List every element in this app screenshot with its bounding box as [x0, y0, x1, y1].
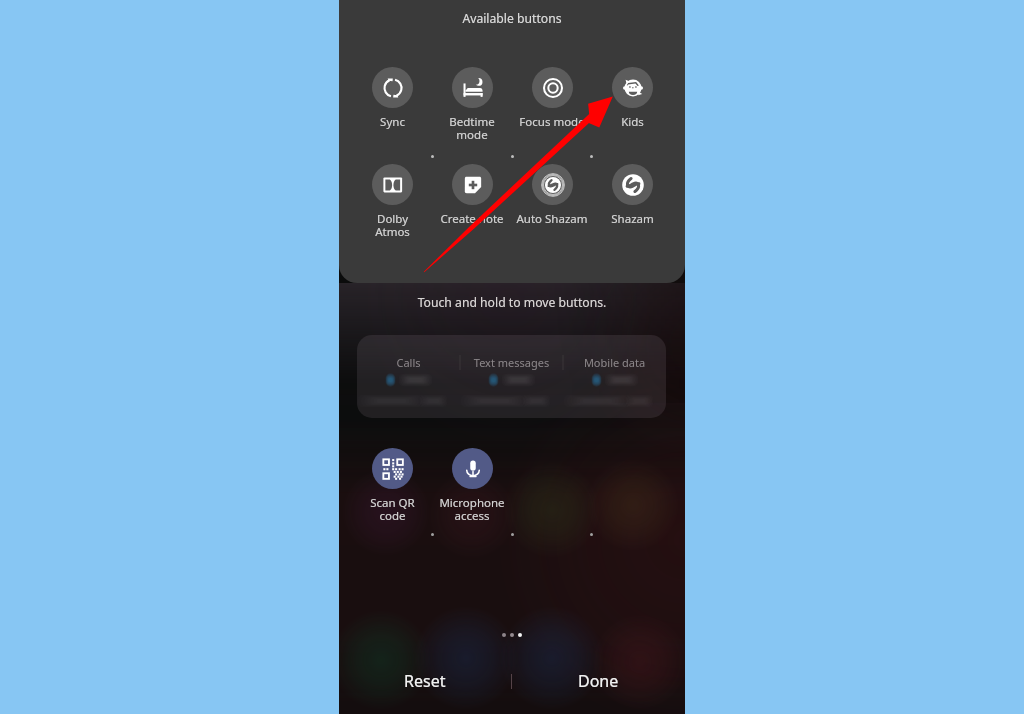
- other: Create note: [452, 164, 493, 205]
- staticText: Mobile data: [563, 355, 666, 370]
- button[interactable]: Shazam: [592, 164, 672, 227]
- button[interactable]: Reset: [339, 665, 511, 697]
- staticText: Touch and hold to move buttons.: [339, 294, 685, 311]
- staticText: Calls: [357, 355, 460, 370]
- staticText: Microphone access: [439, 495, 505, 524]
- other: Dolby Atmos: [372, 164, 413, 205]
- staticText: Scan QR code: [370, 495, 415, 524]
- other: Auto Shazam: [532, 164, 573, 205]
- staticText: Shazam: [611, 211, 654, 227]
- button[interactable]: Microphone access: [432, 448, 512, 524]
- staticText: Auto Shazam: [516, 211, 588, 227]
- staticText: Available buttons: [339, 10, 685, 27]
- staticText: Done: [578, 670, 619, 692]
- button[interactable]: Scan QR code: [352, 448, 432, 524]
- staticText: Bedtime mode: [449, 114, 495, 143]
- staticText: Create note: [440, 211, 504, 227]
- button[interactable]: Calls: [357, 335, 666, 418]
- button[interactable]: Focus mode: [512, 67, 592, 130]
- other: Scan QR code: [372, 448, 413, 489]
- staticText: Reset: [404, 670, 446, 692]
- staticText: Sync: [380, 114, 405, 130]
- other: Sync: [372, 67, 413, 108]
- button[interactable]: Kids: [592, 67, 672, 130]
- button[interactable]: Done: [512, 665, 685, 697]
- button[interactable]: Auto Shazam: [512, 164, 592, 227]
- other: Shazam: [612, 164, 653, 205]
- other: Bedtime mode: [452, 67, 493, 108]
- staticText: Kids: [621, 114, 644, 130]
- staticText: Dolby Atmos: [375, 211, 410, 240]
- other: Focus mode: [532, 67, 573, 108]
- button[interactable]: Bedtime mode: [432, 67, 512, 143]
- staticText: Text messages: [460, 355, 563, 370]
- button[interactable]: Sync: [352, 67, 432, 130]
- button[interactable]: Create note: [432, 164, 512, 227]
- button[interactable]: Dolby Atmos: [352, 164, 432, 240]
- staticText: Focus mode: [519, 114, 585, 130]
- other: Microphone access: [452, 448, 493, 489]
- other: Kids: [612, 67, 653, 108]
